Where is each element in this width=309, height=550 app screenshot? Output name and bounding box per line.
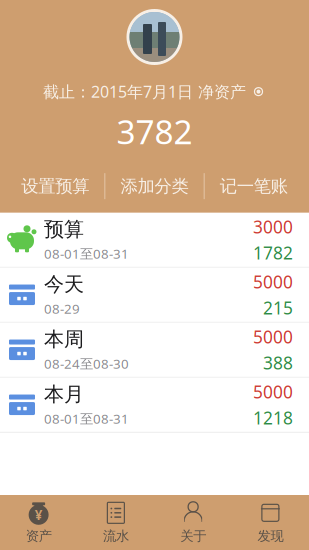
staticText: 3782: [116, 109, 192, 153]
staticText: 5000: [253, 380, 293, 403]
button[interactable]: 添加分类: [105, 165, 204, 207]
staticText: 设置预算: [21, 175, 89, 197]
staticText: 发现: [257, 528, 283, 544]
staticText: 08-24至08-30: [44, 355, 129, 372]
staticText: 5000: [253, 325, 293, 348]
staticText: 5000: [253, 270, 293, 293]
staticText: 截止：2015年7月1日 净资产: [43, 81, 246, 102]
staticText: 215: [263, 296, 293, 319]
staticText: 预算: [44, 217, 84, 242]
staticText: 本周: [44, 327, 84, 352]
button[interactable]: 流水: [77, 495, 154, 550]
staticText: 本月: [44, 382, 84, 407]
button[interactable]: 预算: [0, 213, 309, 268]
staticText: 1782: [253, 241, 293, 264]
staticText: 关于: [180, 528, 206, 544]
staticText: 资产: [26, 528, 52, 544]
button[interactable]: 关于: [154, 495, 232, 550]
button[interactable]: 今天: [0, 268, 309, 323]
button[interactable]: ¥: [0, 495, 77, 550]
staticText: 流水: [103, 528, 129, 544]
button[interactable]: 发现: [232, 495, 309, 550]
staticText: 08-01至08-31: [44, 245, 129, 262]
button[interactable]: 本周: [0, 323, 309, 378]
staticText: 08-01至08-31: [44, 410, 129, 427]
staticText: 添加分类: [120, 175, 188, 197]
staticText: 1218: [253, 406, 293, 429]
button[interactable]: 设置预算: [6, 165, 104, 207]
button[interactable]: 记一笔账: [205, 165, 303, 207]
staticText: 今天: [44, 272, 84, 297]
staticText: ¥: [35, 506, 43, 524]
staticText: 3000: [253, 215, 293, 238]
staticText: 记一笔账: [220, 175, 288, 197]
button[interactable]: 本月: [0, 378, 309, 433]
staticText: 08-29: [44, 300, 80, 317]
staticText: 388: [263, 351, 293, 374]
